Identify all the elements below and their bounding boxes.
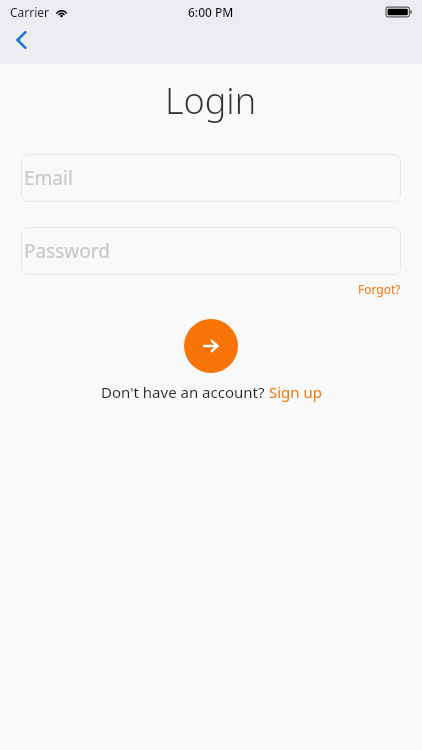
button[interactable]: Back [4,22,40,58]
button[interactable]: Sign up [269,382,322,402]
button[interactable]: Forgot? [358,281,401,297]
staticText: 6:00 PM [188,4,234,20]
button[interactable]: Email [21,154,401,202]
button[interactable]: Password [21,227,401,275]
staticText: Forgot? [358,281,401,297]
staticText: Password [24,238,110,264]
staticText: Email [24,165,73,191]
button[interactable]: Submit [184,319,238,373]
staticText: Carrier [10,4,50,20]
staticText: Don't have an account? [101,382,269,402]
staticText: Sign up [269,382,322,402]
staticText: Login [165,76,257,125]
